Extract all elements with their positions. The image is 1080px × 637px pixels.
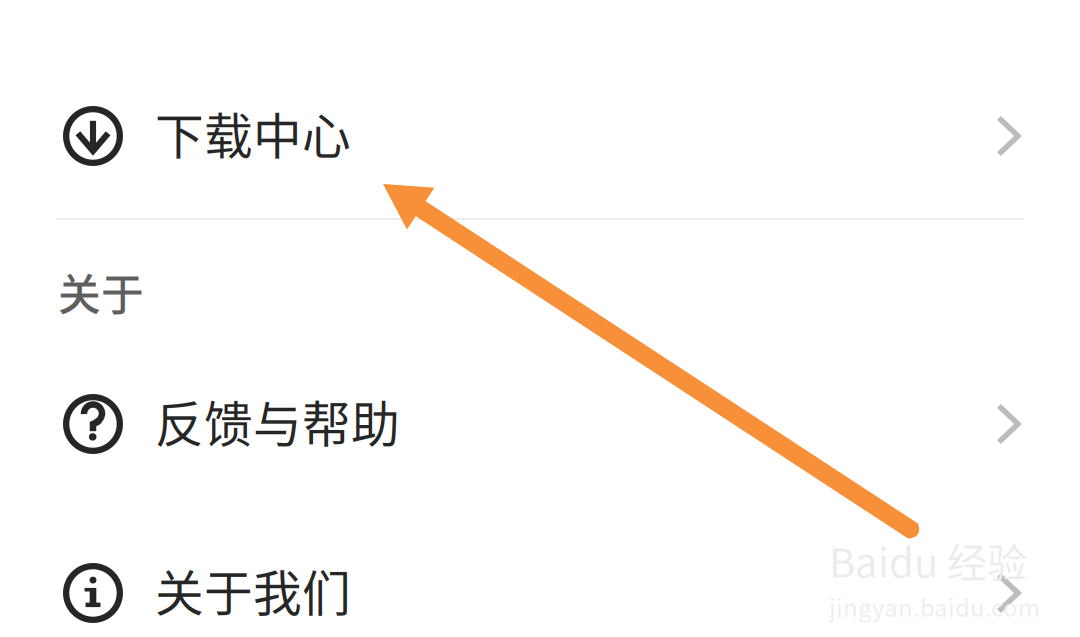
staticText: jingyan.baidu.com (829, 589, 1040, 624)
staticText: 关于 (58, 261, 144, 323)
button[interactable]: 关于我们 (0, 527, 1080, 637)
button[interactable]: 反馈与帮助 (0, 358, 1080, 490)
staticText: Baidu 经验 (829, 531, 1027, 589)
staticText: 关于我们 (155, 555, 351, 625)
staticText: 反馈与帮助 (155, 386, 400, 456)
staticText: 下载中心 (155, 98, 351, 168)
button[interactable]: 下载中心 (0, 70, 1080, 202)
